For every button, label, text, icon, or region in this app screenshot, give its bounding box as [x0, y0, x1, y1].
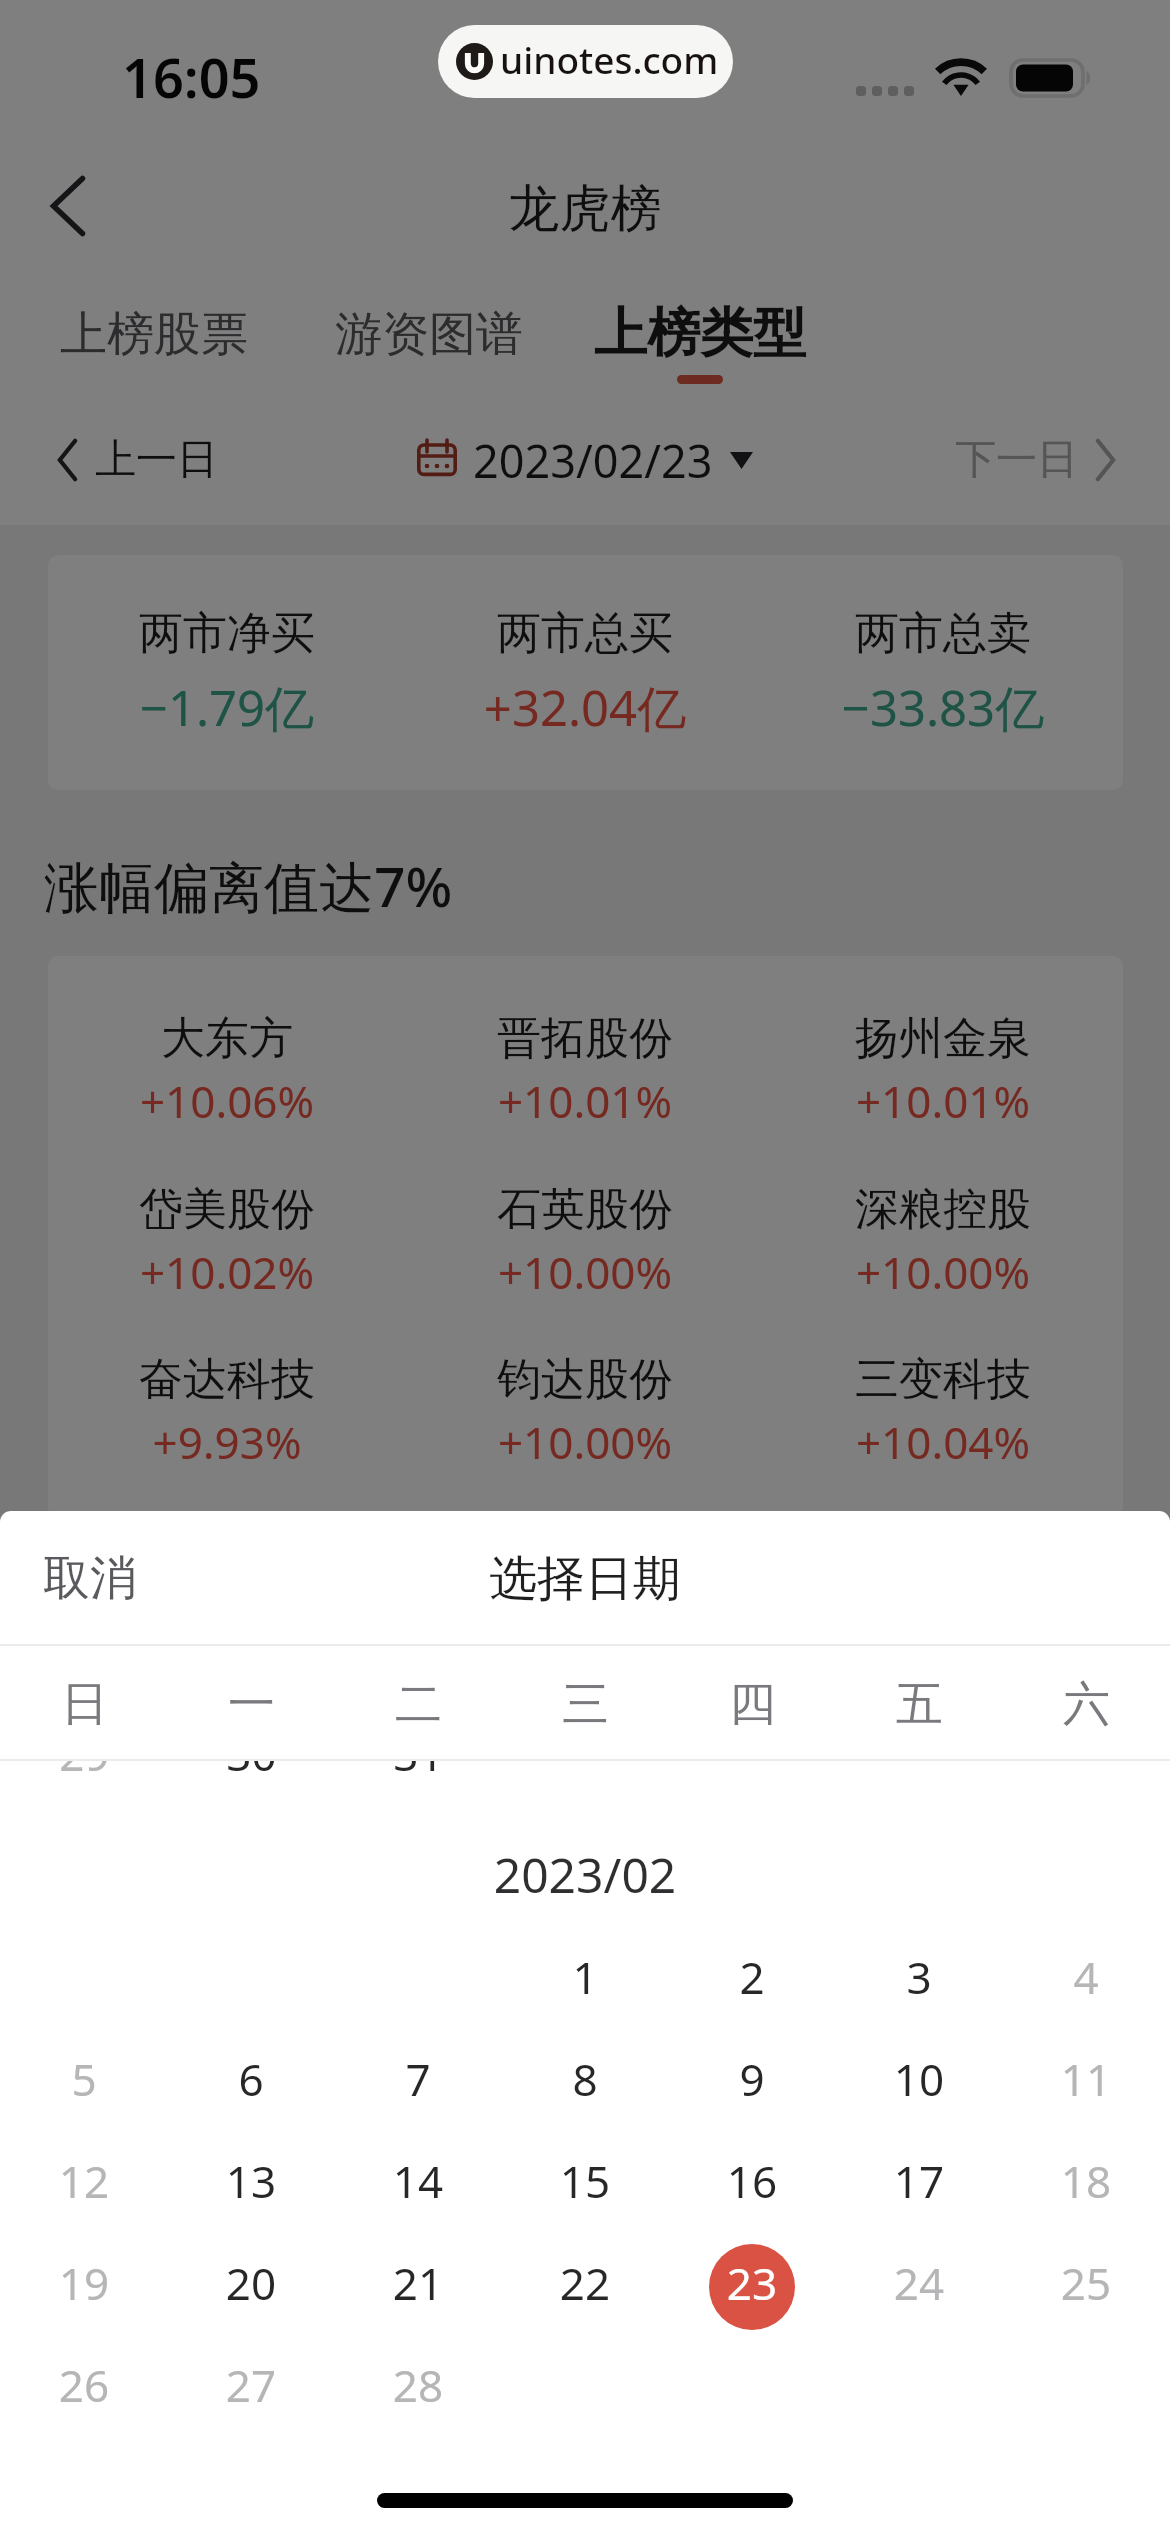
button[interactable]: 22	[542, 2244, 628, 2330]
staticText: 4	[1043, 1947, 1129, 2007]
button[interactable]: 2	[709, 1938, 795, 2024]
button[interactable]: 游资图谱	[269, 277, 589, 389]
button[interactable]: 11	[1043, 2040, 1129, 2126]
staticText: 10	[876, 2049, 962, 2109]
staticText: 29	[1, 1724, 168, 1784]
button[interactable]: 25	[1043, 2244, 1129, 2330]
button[interactable]: 19	[41, 2244, 127, 2330]
staticText: 8	[542, 2049, 628, 2109]
button[interactable]: 岱美股份	[48, 1156, 406, 1326]
staticText: 钧达股份	[406, 1352, 764, 1407]
staticText: +10.04%	[764, 1412, 1122, 1472]
button[interactable]: 24	[876, 2244, 962, 2330]
button[interactable]: 16	[709, 2142, 795, 2228]
staticText: 5	[41, 2049, 127, 2109]
button[interactable]: 大东方	[48, 985, 406, 1155]
staticText: 深粮控股	[764, 1182, 1122, 1237]
staticText: 6	[208, 2049, 294, 2109]
staticText: 龙虎榜	[0, 177, 1170, 241]
staticText: 2	[709, 1947, 795, 2007]
button[interactable]: 15	[542, 2142, 628, 2228]
button[interactable]: 上一日	[57, 424, 218, 496]
button[interactable]: 上榜类型	[540, 275, 860, 387]
button[interactable]: 钧达股份	[406, 1326, 764, 1496]
button[interactable]: 2023/02/23	[417, 424, 753, 496]
staticText: 2023/02	[0, 1842, 1170, 1907]
staticText: +10.02%	[48, 1242, 406, 1302]
staticText: 9	[709, 2049, 795, 2109]
staticText: 22	[542, 2253, 628, 2313]
staticText: 21	[375, 2253, 461, 2313]
staticText: 11	[1043, 2049, 1129, 2109]
button[interactable]: 三变科技	[764, 1326, 1122, 1496]
staticText: 扬州金泉	[764, 1011, 1122, 1066]
staticText: 7	[375, 2049, 461, 2109]
button[interactable]: 石英股份	[406, 1156, 764, 1326]
button[interactable]: 13	[208, 2142, 294, 2228]
button[interactable]: 17	[876, 2142, 962, 2228]
button[interactable]: 奋达科技	[48, 1326, 406, 1496]
staticText: 17	[876, 2151, 962, 2211]
button[interactable]: 10	[876, 2040, 962, 2126]
button[interactable]: 7	[375, 2040, 461, 2126]
staticText: 1	[542, 1947, 628, 2007]
button[interactable]: 23	[709, 2244, 795, 2330]
staticText: 19	[41, 2253, 127, 2313]
button[interactable]: Back	[8, 146, 128, 266]
staticText: 石英股份	[406, 1182, 764, 1237]
staticText: 涨幅偏离值达7%	[44, 848, 453, 923]
staticText: 两市净买	[48, 606, 406, 661]
button[interactable]: 上榜股票	[0, 277, 314, 389]
button[interactable]: 26	[41, 2346, 127, 2432]
staticText: 上榜股票	[0, 305, 314, 364]
button[interactable]: 3	[876, 1938, 962, 2024]
staticText: 晋拓股份	[406, 1011, 764, 1066]
button[interactable]: 21	[375, 2244, 461, 2330]
staticText: 奋达科技	[48, 1352, 406, 1407]
button[interactable]: 下一日	[955, 424, 1116, 496]
staticText: 四	[669, 1675, 836, 1734]
staticText: 24	[876, 2253, 962, 2313]
staticText: 2023/02/23	[473, 430, 713, 491]
staticText: 16:05	[122, 40, 261, 114]
button[interactable]: 28	[375, 2346, 461, 2432]
button[interactable]: 20	[208, 2244, 294, 2330]
staticText: 六	[1003, 1675, 1170, 1734]
staticText: 23	[709, 2253, 795, 2313]
button[interactable]: 27	[208, 2346, 294, 2432]
staticText: −1.79亿	[48, 674, 406, 741]
button[interactable]: 12	[41, 2142, 127, 2228]
staticText: 两市总卖	[764, 606, 1122, 661]
staticText: +9.93%	[48, 1412, 406, 1472]
staticText: 三变科技	[764, 1352, 1122, 1407]
staticText: 一	[168, 1675, 335, 1734]
button[interactable]: 1	[542, 1938, 628, 2024]
staticText: 两市总买	[406, 606, 764, 661]
staticText: 五	[836, 1675, 1003, 1734]
button[interactable]: 8	[542, 2040, 628, 2126]
staticText: +10.00%	[406, 1242, 764, 1302]
staticText: 30	[168, 1724, 335, 1784]
staticText: 二	[335, 1675, 502, 1734]
staticText: 三	[502, 1675, 669, 1734]
staticText: 上榜类型	[540, 300, 860, 367]
button[interactable]: 5	[41, 2040, 127, 2126]
button[interactable]: 4	[1043, 1938, 1129, 2024]
staticText: +10.00%	[764, 1242, 1122, 1302]
staticText: 20	[208, 2253, 294, 2313]
button[interactable]: 取消	[20, 1531, 160, 1625]
staticText: 日	[1, 1675, 168, 1734]
button[interactable]: 深粮控股	[764, 1156, 1122, 1326]
staticText: +10.00%	[406, 1412, 764, 1472]
staticText: 15	[542, 2151, 628, 2211]
button[interactable]: 晋拓股份	[406, 985, 764, 1155]
staticText: 选择日期	[0, 1549, 1170, 1609]
button[interactable]: 18	[1043, 2142, 1129, 2228]
staticText: 14	[375, 2151, 461, 2211]
button[interactable]: 9	[709, 2040, 795, 2126]
staticText: 18	[1043, 2151, 1129, 2211]
button[interactable]: 扬州金泉	[764, 985, 1122, 1155]
button[interactable]: 6	[208, 2040, 294, 2126]
staticText: 大东方	[48, 1011, 406, 1066]
button[interactable]: 14	[375, 2142, 461, 2228]
